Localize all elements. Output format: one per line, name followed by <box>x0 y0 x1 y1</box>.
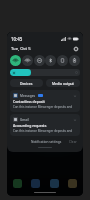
button[interactable]: Media output <box>46 79 80 87</box>
button[interactable]: Settings <box>72 45 79 52</box>
button[interactable]: Notification settings <box>29 139 64 145</box>
button[interactable]: Do not disturb <box>34 55 45 66</box>
staticText: Devices <box>20 81 33 86</box>
staticText: Media output <box>52 81 74 86</box>
staticText: Accounting requests <box>13 123 47 128</box>
staticText: Can this instance Messenger deposits and… <box>13 129 77 133</box>
staticText: Messages <box>20 94 36 98</box>
button[interactable]: App <box>31 179 40 188</box>
staticText: Can this instance Messenger deposits and… <box>13 105 77 109</box>
button[interactable]: App <box>13 179 22 188</box>
staticText: Tue, Oct 5 <box>11 46 31 52</box>
button[interactable]: App <box>68 179 77 188</box>
button[interactable]: Expand notification <box>73 94 77 98</box>
button[interactable]: Messages <box>10 90 80 112</box>
button[interactable]: App <box>50 179 59 188</box>
staticText: Contactless deposit <box>13 99 45 104</box>
button[interactable]: Auto-rotate <box>57 55 68 66</box>
button[interactable]: Battery Saver <box>69 55 80 66</box>
staticText: Clear <box>69 140 77 144</box>
button[interactable]: Devices <box>10 79 43 87</box>
button[interactable]: Expand notification <box>73 118 77 122</box>
button[interactable]: Wi-Fi <box>22 55 33 66</box>
button[interactable]: Internet <box>10 55 21 66</box>
button[interactable]: Bluetooth <box>45 55 56 66</box>
staticText: Notification settings <box>31 140 62 144</box>
button[interactable]: Gmail <box>10 114 80 136</box>
button[interactable]: Clear <box>67 139 79 145</box>
staticText: Gmail <box>20 118 29 122</box>
staticText: 10:45 <box>11 36 23 42</box>
button[interactable]: Brightness <box>10 69 80 76</box>
